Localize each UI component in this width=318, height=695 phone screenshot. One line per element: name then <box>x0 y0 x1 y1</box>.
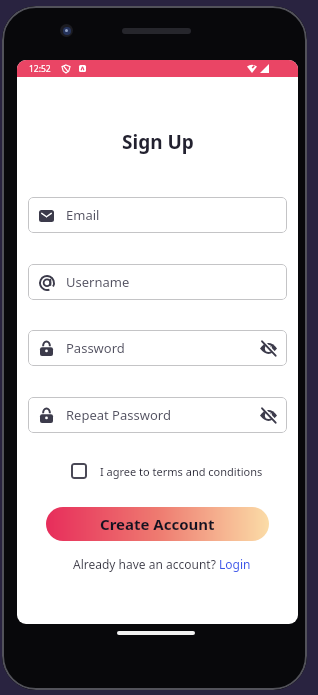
button[interactable]: Password <box>28 330 287 366</box>
button[interactable]: Repeat Password <box>28 397 287 433</box>
staticText: Email <box>66 206 100 224</box>
staticText: Sign Up <box>122 129 194 155</box>
staticText: Create Account <box>100 514 215 534</box>
staticText: Username <box>66 273 130 291</box>
button[interactable]: Username <box>28 264 287 300</box>
button[interactable]: Create Account <box>46 507 269 541</box>
button[interactable]: I agree to terms and conditions <box>71 463 263 479</box>
button[interactable]: Email <box>28 197 287 233</box>
staticText: Password <box>66 339 125 357</box>
staticText: I agree to terms and conditions <box>100 464 263 479</box>
staticText: 12:52 <box>29 63 51 75</box>
staticText: Repeat Password <box>66 406 171 424</box>
button[interactable]: Already have an account? Login <box>73 556 251 572</box>
